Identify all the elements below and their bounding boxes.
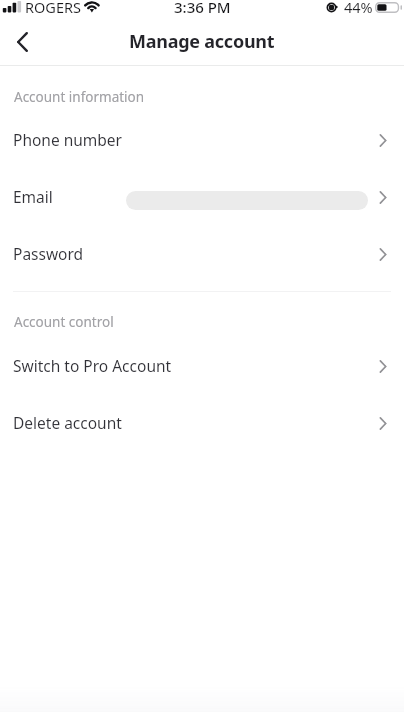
staticText: Delete account [13, 412, 122, 433]
staticText: Account control [14, 313, 114, 331]
staticText: Account information [14, 88, 145, 106]
staticText: Password [13, 243, 84, 264]
staticText: 44% [344, 0, 373, 17]
button[interactable]: Phone number [0, 111, 404, 168]
staticText: 3:36 PM [174, 0, 231, 17]
staticText: Manage account [129, 29, 275, 54]
button[interactable]: Password [0, 225, 404, 282]
button[interactable]: Switch to Pro Account [0, 337, 404, 394]
button[interactable]: Back [0, 22, 44, 66]
staticText: Phone number [13, 129, 123, 150]
button[interactable]: Delete account [0, 394, 404, 451]
staticText: Switch to Pro Account [13, 355, 172, 376]
staticText: Email [13, 186, 53, 207]
button[interactable]: Email [0, 168, 404, 225]
staticText: ROGERS [25, 0, 81, 17]
